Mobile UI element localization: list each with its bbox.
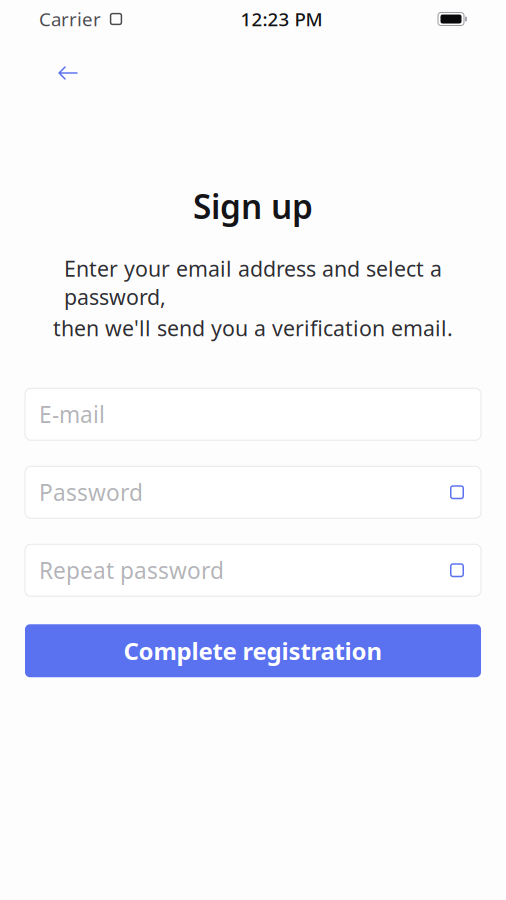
button[interactable]: Password bbox=[25, 466, 481, 518]
staticText: Password bbox=[39, 477, 143, 507]
staticText: Carrier bbox=[39, 7, 101, 31]
staticText: E-mail bbox=[39, 399, 105, 429]
button[interactable]: Back bbox=[47, 54, 89, 92]
staticText: Sign up bbox=[193, 184, 313, 228]
staticText: Enter your email address and select a pa… bbox=[64, 254, 442, 311]
button[interactable]: E-mail bbox=[25, 388, 481, 440]
staticText: Repeat password bbox=[39, 555, 224, 585]
staticText: then we'll send you a verification email… bbox=[53, 314, 453, 342]
staticText: 12:23 PM bbox=[240, 7, 322, 31]
staticText: Complete registration bbox=[123, 635, 382, 667]
button[interactable]: Repeat password bbox=[25, 544, 481, 596]
button[interactable]: Complete registration bbox=[25, 624, 481, 677]
